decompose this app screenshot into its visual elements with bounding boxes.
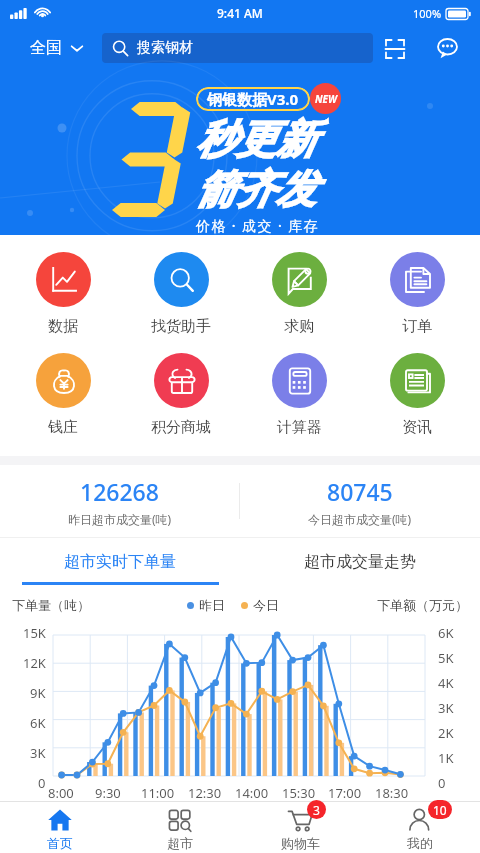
- staticText: 昨日超市成交量(吨): [68, 511, 172, 527]
- staticText: 3K: [30, 744, 46, 762]
- button[interactable]: 计算器: [244, 347, 354, 448]
- staticText: 8:00: [48, 784, 74, 802]
- button[interactable]: 资讯: [362, 347, 472, 448]
- button[interactable]: 超市: [120, 802, 240, 853]
- staticText: 首页: [47, 835, 73, 851]
- staticText: 搜索钢材: [137, 39, 193, 57]
- staticText: 下单额（万元）: [377, 597, 468, 613]
- staticText: 全国: [30, 38, 62, 58]
- staticText: 2K: [438, 724, 454, 742]
- staticText: 5K: [438, 649, 454, 667]
- staticText: 订单: [402, 317, 432, 336]
- button[interactable]: 求购: [244, 246, 354, 347]
- staticText: 计算器: [277, 418, 322, 437]
- staticText: 1K: [438, 749, 454, 767]
- button[interactable]: 超市实时下单量: [0, 538, 240, 585]
- button[interactable]: 126268: [0, 465, 239, 537]
- staticText: 找货助手: [151, 317, 211, 336]
- button[interactable]: 搜索钢材: [102, 33, 373, 63]
- staticText: 15:30: [282, 784, 316, 802]
- staticText: 0: [438, 774, 446, 792]
- button[interactable]: 10: [360, 802, 480, 853]
- button[interactable]: 3: [240, 802, 360, 853]
- button[interactable]: 订单: [362, 246, 472, 347]
- button[interactable]: Messages: [434, 35, 461, 62]
- button[interactable]: 数据: [8, 246, 118, 347]
- staticText: 钱庄: [48, 418, 78, 437]
- staticText: 14:00: [235, 784, 269, 802]
- staticText: 箭齐发: [196, 164, 316, 214]
- staticText: 12:30: [188, 784, 222, 802]
- button[interactable]: 80745: [240, 465, 480, 537]
- staticText: 资讯: [402, 418, 432, 437]
- button[interactable]: 全国: [30, 38, 84, 58]
- staticText: 9:41 AM: [217, 5, 263, 21]
- button[interactable]: 钱庄: [8, 347, 118, 448]
- staticText: 昨日: [199, 597, 225, 613]
- staticText: 100%: [413, 6, 442, 21]
- staticText: 价格 · 成交 · 库存: [196, 216, 319, 235]
- staticText: 超市成交量走势: [304, 552, 416, 572]
- staticText: 17:00: [328, 784, 362, 802]
- staticText: 6K: [30, 714, 46, 732]
- staticText: 12K: [23, 654, 46, 672]
- staticText: 6K: [438, 624, 454, 642]
- staticText: 15K: [23, 624, 46, 642]
- button[interactable]: 超市成交量走势: [240, 538, 480, 585]
- staticText: 4K: [438, 674, 454, 692]
- staticText: 11:00: [141, 784, 175, 802]
- button[interactable]: Scan: [381, 35, 408, 62]
- staticText: 80745: [327, 476, 393, 507]
- staticText: 购物车: [281, 835, 320, 851]
- staticText: 数据: [48, 317, 78, 336]
- staticText: 我的: [407, 835, 433, 851]
- staticText: 求购: [284, 317, 314, 336]
- button[interactable]: 首页: [0, 802, 120, 853]
- staticText: 0: [38, 774, 46, 792]
- staticText: 超市: [167, 835, 193, 851]
- staticText: 9K: [30, 684, 46, 702]
- staticText: 超市实时下单量: [64, 552, 176, 572]
- staticText: 下单量（吨）: [12, 597, 90, 613]
- button[interactable]: 积分商城: [126, 347, 236, 448]
- button[interactable]: 找货助手: [126, 246, 236, 347]
- staticText: 积分商城: [151, 418, 211, 437]
- staticText: 10: [433, 802, 447, 818]
- staticText: 18:30: [375, 784, 409, 802]
- staticText: 今日: [253, 597, 279, 613]
- staticText: 秒更新: [196, 114, 316, 164]
- staticText: 3: [313, 802, 320, 818]
- staticText: 今日超市成交量(吨): [308, 511, 412, 527]
- staticText: 钢银数据V3.0: [207, 89, 299, 109]
- staticText: 126268: [80, 476, 159, 507]
- staticText: 3K: [438, 699, 454, 717]
- staticText: NEW: [315, 92, 337, 106]
- staticText: 9:30: [95, 784, 121, 802]
